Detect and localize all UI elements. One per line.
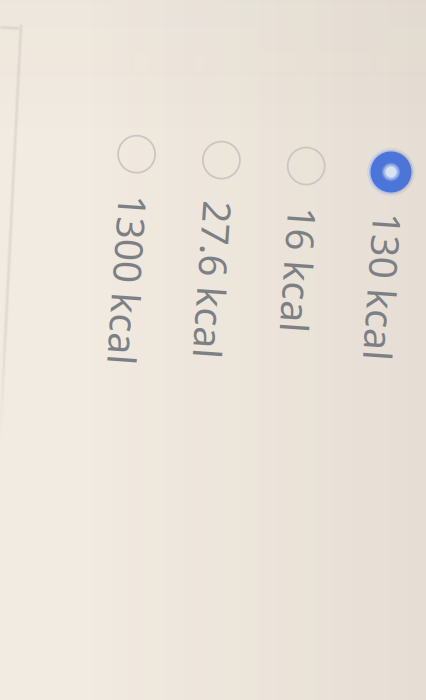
button[interactable]: 27.6 kcal bbox=[0, 335, 426, 379]
staticText: 27.6 kcal bbox=[62, 331, 220, 383]
button[interactable]: 130 kcal bbox=[0, 165, 426, 209]
staticText: 130 kcal bbox=[62, 161, 210, 213]
staticText: 16 kcal bbox=[62, 246, 188, 298]
button[interactable]: 1300 kcal bbox=[0, 420, 426, 464]
button[interactable]: 16 kcal bbox=[0, 250, 426, 294]
